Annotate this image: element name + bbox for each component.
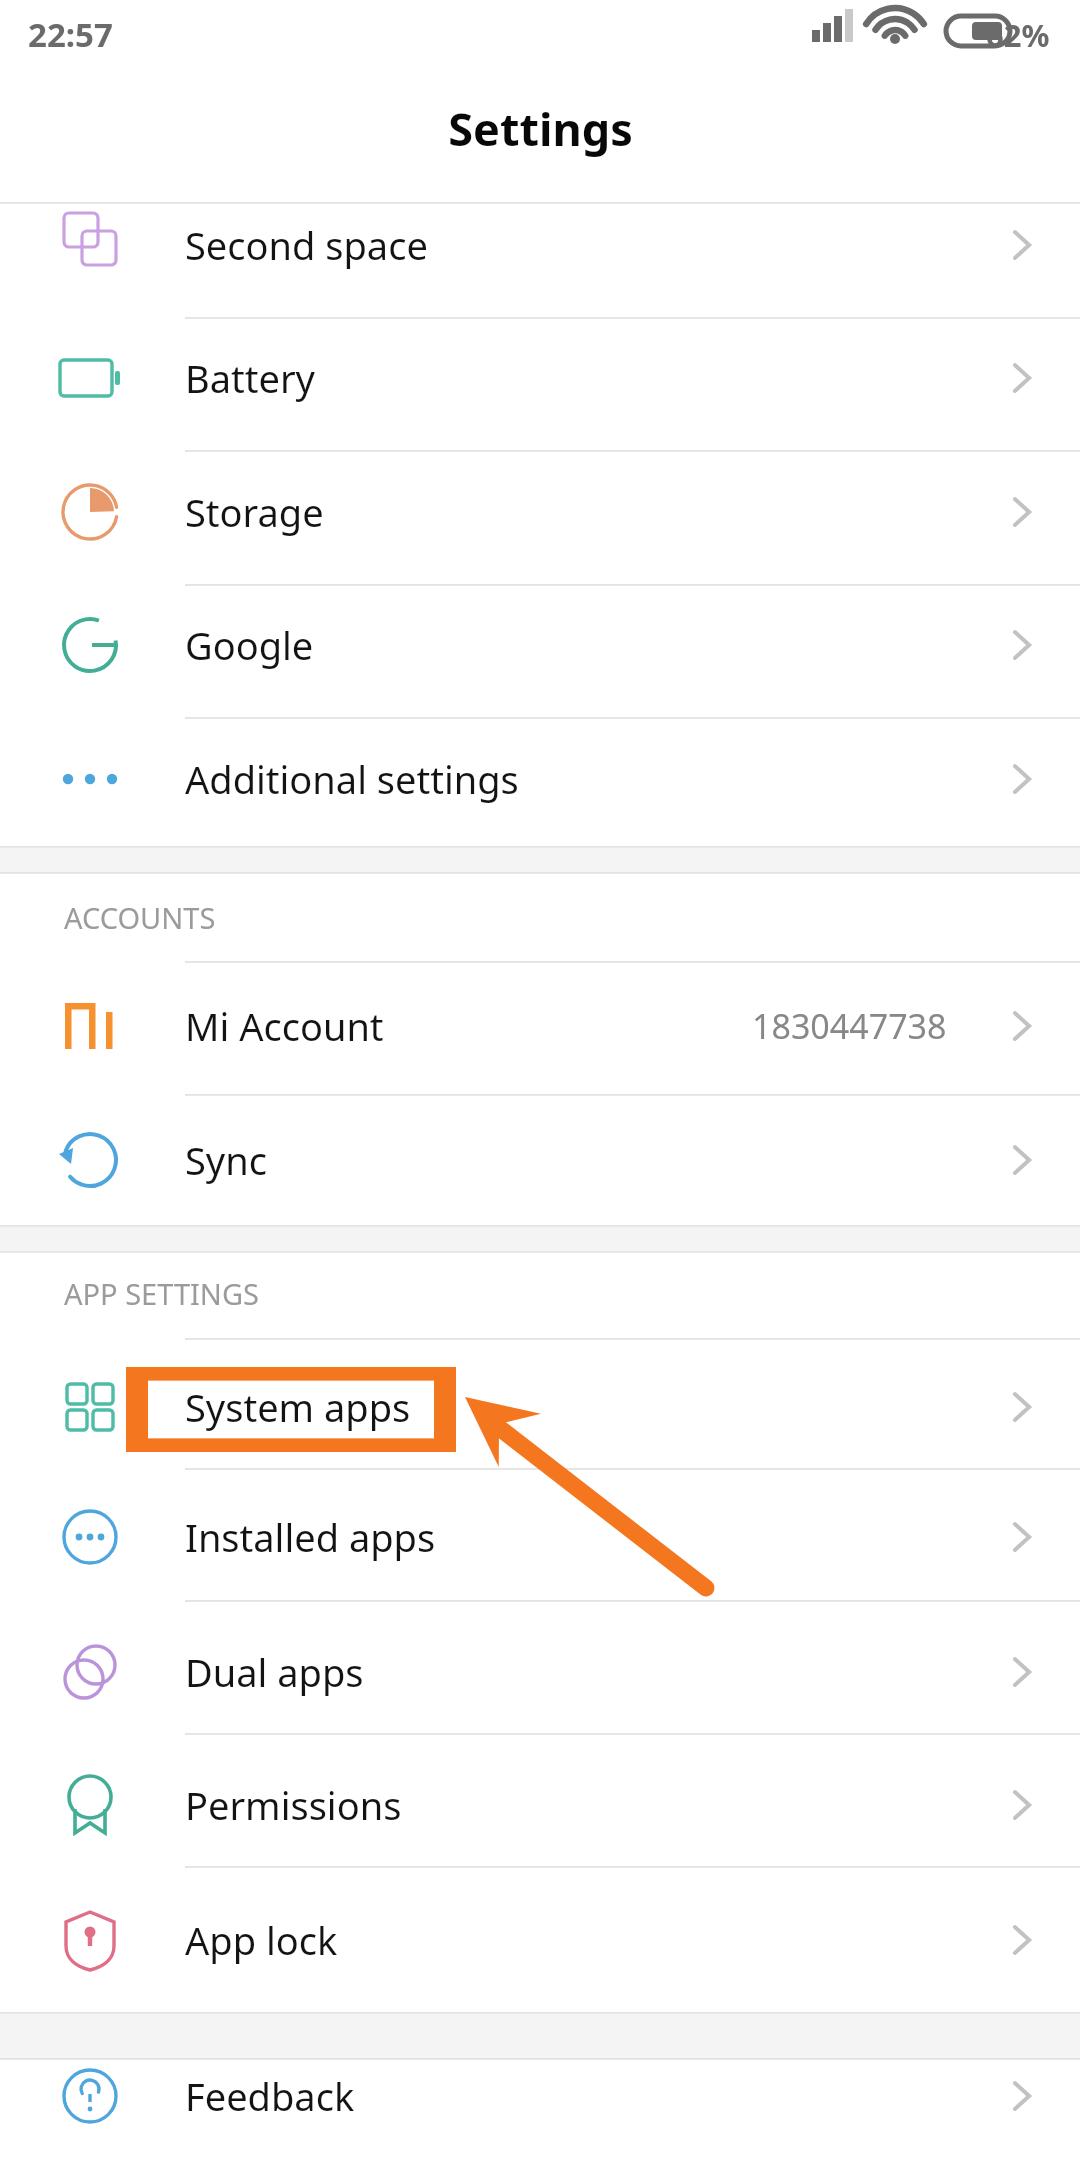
staticText: Installed apps bbox=[185, 1511, 436, 1563]
button[interactable]: Installed apps bbox=[0, 1470, 1080, 1604]
staticText: 1830447738 bbox=[752, 1003, 947, 1049]
staticText: Permissions bbox=[185, 1779, 402, 1831]
staticText: Additional settings bbox=[185, 753, 519, 805]
button[interactable]: Dual apps bbox=[0, 1605, 1080, 1739]
button[interactable]: Google bbox=[0, 578, 1080, 712]
staticText: Second space bbox=[185, 219, 428, 271]
staticText: ACCOUNTS bbox=[64, 898, 216, 937]
button[interactable]: Battery bbox=[0, 311, 1080, 445]
staticText: 22:57 bbox=[28, 12, 113, 57]
button[interactable]: App lock bbox=[0, 1873, 1080, 2007]
staticText: Storage bbox=[185, 486, 324, 538]
button[interactable]: Mi Account bbox=[0, 959, 1080, 1093]
button[interactable]: Sync bbox=[0, 1093, 1080, 1227]
button[interactable]: System apps bbox=[0, 1340, 1080, 1474]
staticText: Battery bbox=[185, 352, 315, 404]
staticText: 62% bbox=[986, 14, 1050, 56]
staticText: Google bbox=[185, 619, 314, 671]
staticText: App lock bbox=[185, 1914, 338, 1966]
button[interactable]: Additional settings bbox=[0, 712, 1080, 846]
staticText: Mi Account bbox=[185, 1000, 384, 1052]
button[interactable]: Storage bbox=[0, 445, 1080, 579]
staticText: Feedback bbox=[185, 2070, 355, 2122]
button[interactable]: Second space bbox=[0, 178, 1080, 312]
staticText: APP SETTINGS bbox=[64, 1274, 259, 1313]
staticText: System apps bbox=[185, 1381, 411, 1433]
staticText: Settings bbox=[448, 98, 633, 159]
button[interactable]: Feedback bbox=[0, 2029, 1080, 2160]
staticText: Sync bbox=[185, 1134, 267, 1186]
button[interactable]: Permissions bbox=[0, 1738, 1080, 1872]
staticText: Dual apps bbox=[185, 1646, 364, 1698]
